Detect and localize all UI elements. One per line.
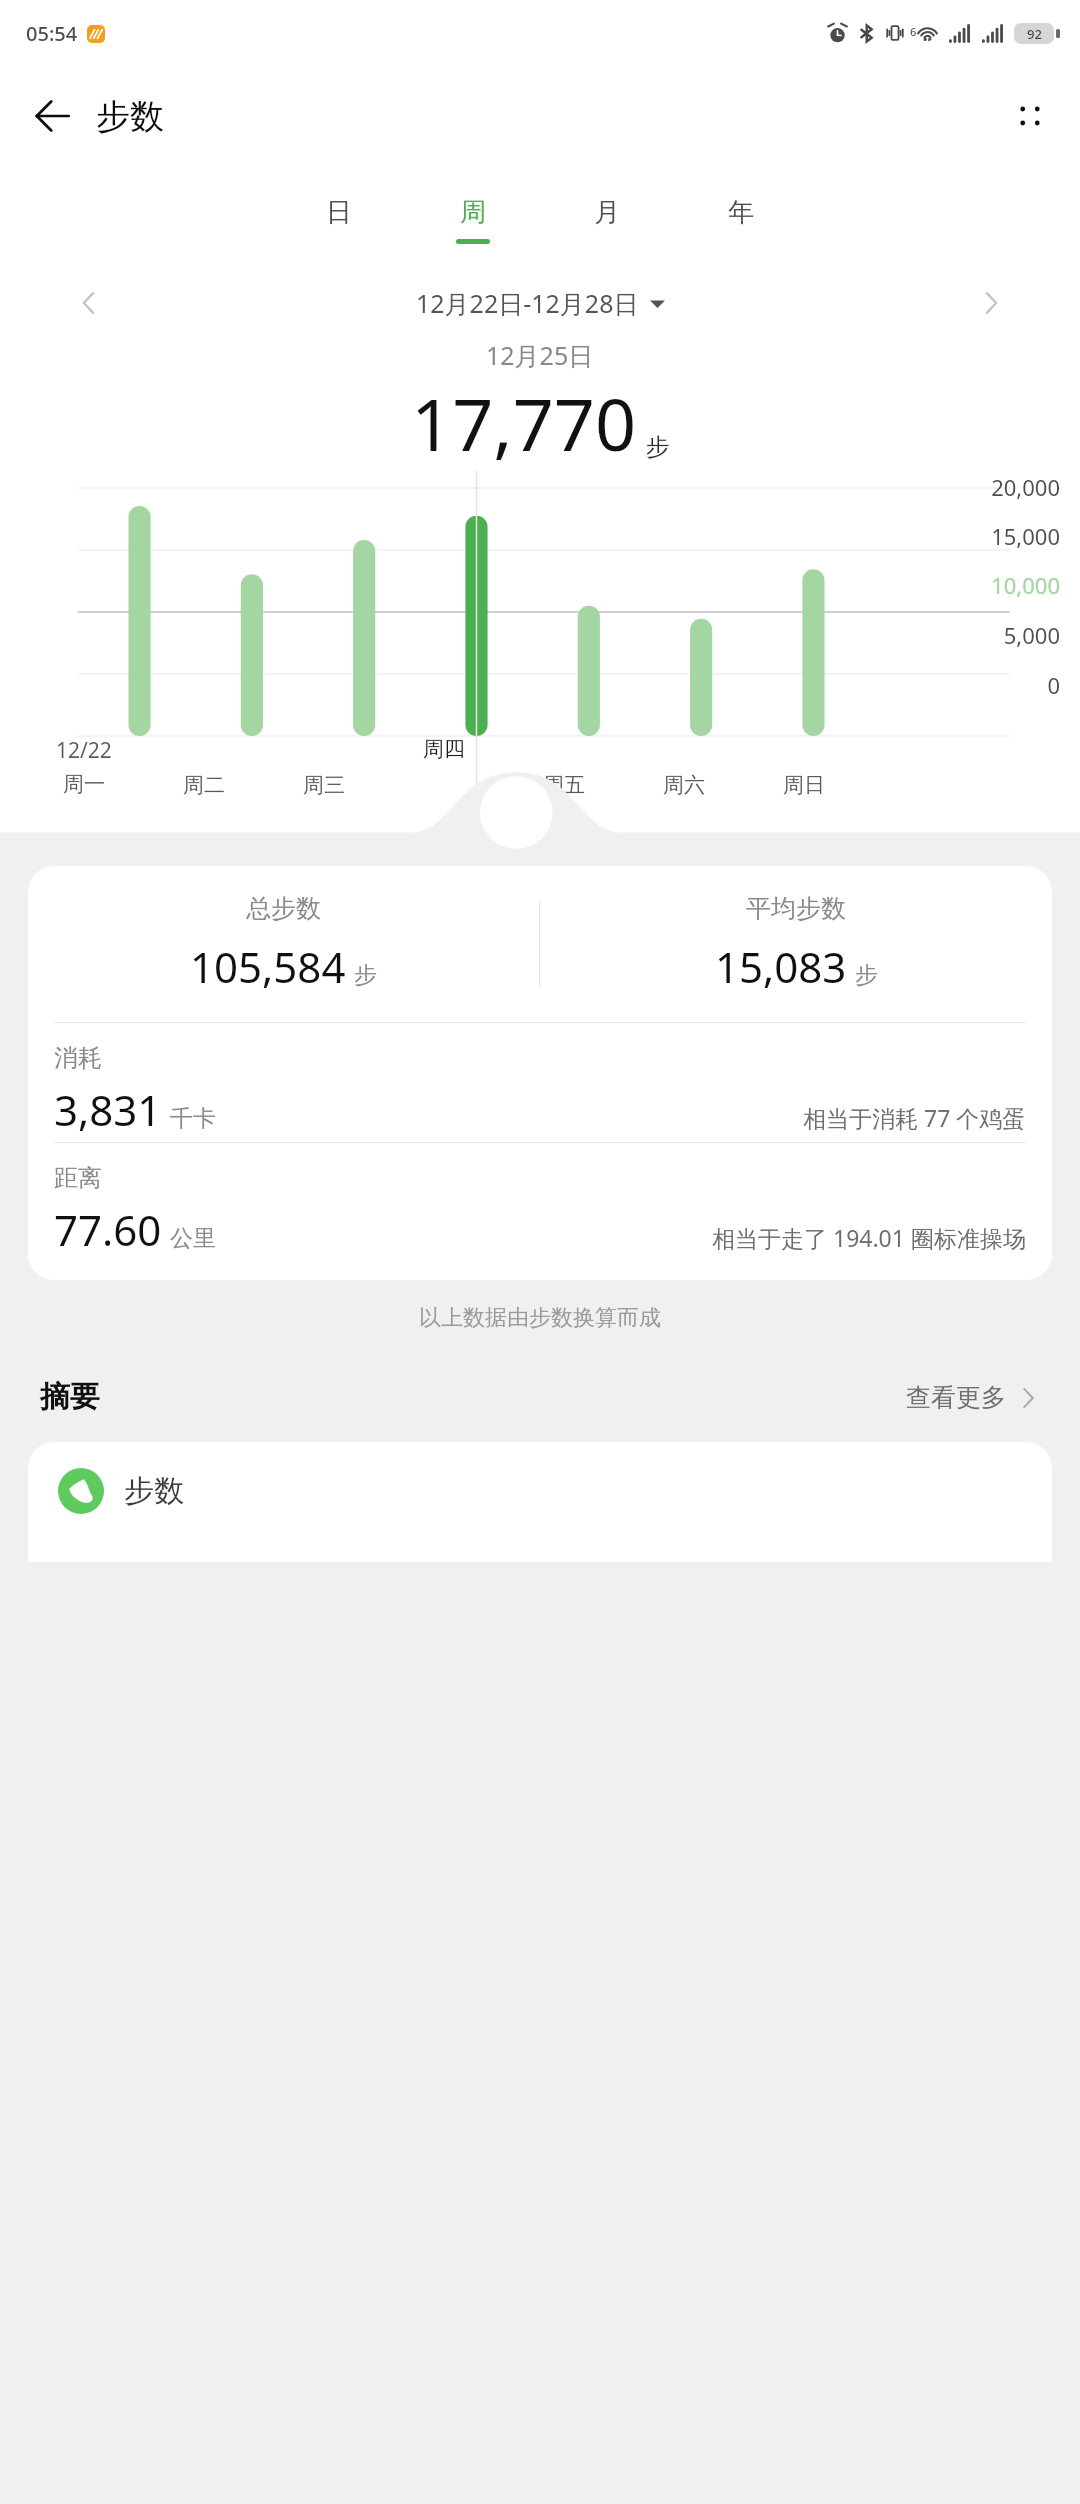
staticText: 摘要 [40, 1378, 100, 1416]
button[interactable]: 消耗 [28, 1023, 1052, 1142]
staticText: 年 [728, 196, 754, 229]
staticText: 5,000 [920, 620, 1060, 650]
staticText: 以上数据由步数换算而成 [0, 1304, 1080, 1332]
staticText: 20,000 [920, 472, 1060, 502]
button[interactable]: 更多选项 [1000, 86, 1060, 146]
staticText: 步 [646, 432, 670, 462]
staticText: 周四 [423, 736, 465, 762]
staticText: 周二 [183, 772, 225, 798]
staticText: 15,000 [920, 521, 1060, 551]
staticText: 15,083 [715, 938, 847, 995]
staticText: 105,584 [190, 938, 346, 995]
button[interactable]: 平均步数 [540, 866, 1052, 1022]
staticText: 步 [855, 961, 878, 990]
staticText: 距离 [54, 1163, 102, 1193]
button[interactable]: 距离 [28, 1143, 1052, 1262]
staticText: 步数 [124, 1472, 184, 1510]
staticText: 周日 [783, 772, 825, 798]
staticText: 12月22日-12月28日 [416, 286, 639, 320]
staticText: 步 [354, 961, 377, 990]
staticText: 周三 [303, 772, 345, 798]
button[interactable]: 月 [540, 196, 674, 244]
staticText: 17,770 [411, 374, 637, 472]
staticText: 12/22 [56, 736, 112, 765]
staticText: 6 [910, 24, 917, 39]
staticText: 相当于走了 194.01 圈标准操场 [712, 1222, 1026, 1253]
button[interactable]: 下一周 [964, 276, 1018, 330]
staticText: 步数 [96, 95, 164, 138]
staticText: 77.60 [54, 1201, 162, 1258]
button[interactable]: 总步数 [28, 866, 539, 1022]
staticText: 92 [1027, 25, 1042, 43]
staticText: 消耗 [54, 1043, 102, 1073]
staticText: 日 [326, 196, 352, 229]
staticText: 0 [920, 670, 1060, 700]
staticText: 公里 [170, 1224, 216, 1253]
staticText: 平均步数 [746, 893, 846, 924]
staticText: 05:54 [26, 20, 78, 47]
button[interactable]: 年 [674, 196, 808, 244]
staticText: 12月25日 [486, 338, 594, 372]
button[interactable]: 返回 [22, 86, 82, 146]
staticText: 10,000 [920, 570, 1060, 600]
staticText: 周 [460, 196, 486, 229]
staticText: 相当于消耗 77 个鸡蛋 [803, 1102, 1026, 1133]
staticText: 千卡 [170, 1104, 216, 1133]
button[interactable]: 日 [272, 196, 406, 244]
staticText: 月 [594, 196, 620, 229]
button[interactable]: 查看更多 [906, 1382, 1040, 1413]
staticText: 总步数 [246, 893, 321, 924]
button[interactable]: 12月22日-12月28日 [416, 286, 665, 320]
button[interactable]: 步数 [28, 1442, 1052, 1562]
button[interactable]: 上一周 [62, 276, 116, 330]
staticText: 3,831 [54, 1081, 162, 1138]
button[interactable]: 周 [406, 196, 540, 244]
staticText: 查看更多 [906, 1382, 1006, 1413]
staticText: 周五 [543, 772, 585, 798]
staticText: 周一 [63, 771, 105, 797]
staticText: 周六 [663, 772, 705, 798]
